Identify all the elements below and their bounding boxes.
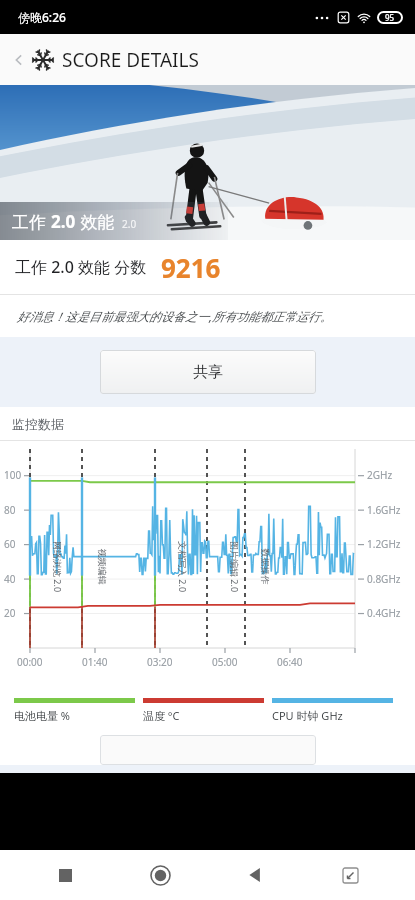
staticText: 好消息！这是目前最强大的设备之一,所有功能都正常运行。 (17, 308, 333, 324)
button[interactable]: 共享 (100, 350, 316, 394)
staticText: 效能 (76, 210, 115, 233)
button[interactable]: Home (137, 852, 183, 898)
staticText: 图片编辑 2.0 (229, 541, 241, 593)
button[interactable] (100, 735, 316, 765)
staticText: 温度 °C (143, 708, 180, 723)
button[interactable]: Recents (42, 852, 88, 898)
staticText: 60 (4, 537, 16, 551)
button[interactable]: Back (232, 852, 278, 898)
staticText: 网络浏览 2.0 (52, 541, 64, 593)
staticText: 100 (4, 468, 22, 482)
staticText: 1.6GHz (367, 503, 401, 517)
staticText: 2GHz (367, 468, 393, 482)
staticText: 01:40 (82, 655, 108, 669)
staticText: 40 (4, 572, 16, 586)
staticText: 电池电量 % (14, 708, 71, 723)
staticText: 傍晚6:26 (18, 9, 66, 25)
staticText: SCORE DETAILS (62, 47, 199, 73)
staticText: 80 (4, 503, 16, 517)
staticText: 03:20 (147, 655, 173, 669)
button[interactable]: Back (6, 47, 32, 73)
staticText: CPU 时钟 GHz (272, 708, 343, 723)
staticText: 工作 2.0 效能 分数 (15, 256, 147, 278)
staticText: 00:00 (17, 655, 43, 669)
staticText: 监控数据 (12, 416, 64, 432)
staticText: 05:00 (212, 655, 238, 669)
staticText: 1.2GHz (367, 537, 401, 551)
staticText: 共享 (193, 363, 223, 382)
staticText: 2.0 (51, 210, 76, 233)
staticText: 0.8GHz (367, 572, 401, 586)
staticText: 文档写入 2.0 (177, 541, 189, 593)
staticText: 视频编辑 (96, 548, 107, 584)
staticText: 20 (4, 606, 16, 620)
staticText: 95 (385, 12, 395, 23)
staticText: 9216 (161, 250, 221, 285)
button[interactable]: Full screen (327, 852, 373, 898)
staticText: 2.0 (122, 217, 137, 231)
staticText: 0.4GHz (367, 606, 401, 620)
staticText: 数据操作 (259, 548, 270, 584)
staticText: 06:40 (277, 655, 303, 669)
staticText: 工作 (12, 210, 51, 233)
